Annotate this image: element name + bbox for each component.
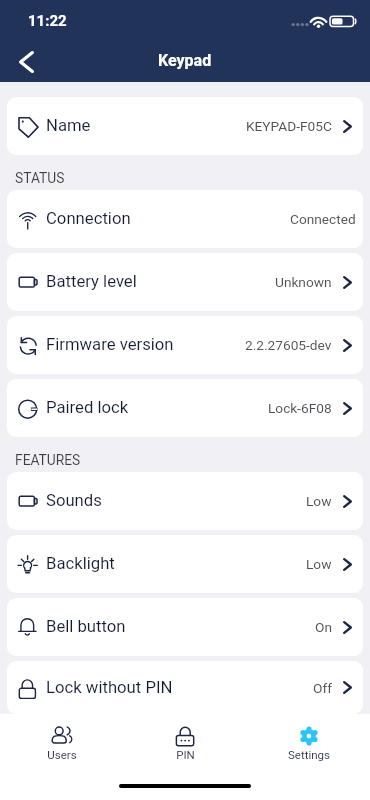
staticText: STATUS (15, 170, 65, 186)
staticText: Off (313, 680, 332, 696)
button[interactable]: Back (2, 42, 50, 82)
staticText: Lock-6F08 (268, 400, 332, 416)
staticText: Firmware version (46, 335, 174, 355)
staticText: Connection (46, 209, 131, 229)
button[interactable]: Firmware version (7, 316, 363, 374)
staticText: Low (306, 493, 332, 509)
button[interactable]: Battery level (7, 253, 363, 311)
staticText: 2.2.27605-dev (245, 337, 332, 353)
button[interactable]: Paired lock (7, 379, 363, 437)
button[interactable]: Connection (7, 190, 363, 248)
staticText: Sounds (46, 491, 102, 511)
staticText: Settings (288, 748, 330, 761)
staticText: 11:22 (28, 12, 67, 30)
staticText: Lock without PIN (46, 678, 173, 698)
staticText: Unknown (275, 274, 332, 290)
staticText: Paired lock (46, 398, 129, 418)
button[interactable]: Sounds (7, 472, 363, 530)
staticText: Name (46, 116, 91, 136)
button[interactable]: PIN (124, 725, 247, 761)
button[interactable]: Settings (247, 725, 370, 761)
staticText: Battery level (46, 272, 137, 292)
staticText: Bell button (46, 617, 126, 637)
button[interactable]: Name (7, 97, 363, 155)
staticText: KEYPAD-F05C (246, 118, 332, 134)
staticText: PIN (176, 748, 195, 761)
staticText: Users (47, 748, 77, 761)
staticText: Keypad (158, 51, 212, 70)
staticText: FEATURES (15, 452, 81, 468)
staticText: On (315, 619, 332, 635)
button[interactable]: Lock without PIN (7, 661, 363, 714)
button[interactable]: Backlight (7, 535, 363, 593)
button[interactable]: Users (0, 725, 124, 761)
staticText: Low (306, 556, 332, 572)
button[interactable]: Bell button (7, 598, 363, 656)
staticText: Backlight (46, 554, 115, 574)
staticText: Connected (290, 211, 356, 227)
